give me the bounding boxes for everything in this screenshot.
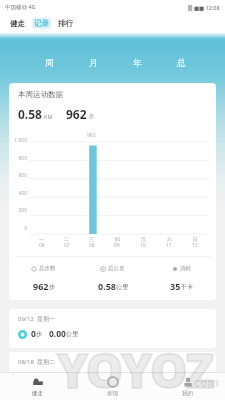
staticText: 千卡 — [181, 283, 193, 291]
staticText: 年 — [133, 57, 142, 68]
staticText: 962 — [87, 132, 96, 139]
staticText: 步 — [36, 373, 42, 381]
staticText: 962 — [33, 280, 49, 292]
button[interactable]: 发现 — [75, 373, 150, 400]
staticText: 总步数 — [39, 265, 56, 272]
staticText: 日 — [193, 236, 198, 242]
staticText: 总公里 — [108, 265, 125, 272]
button[interactable]: 月 — [71, 55, 115, 69]
button[interactable]: 总 — [159, 55, 203, 69]
staticText: 健走 — [32, 390, 43, 397]
staticText: 步 — [36, 330, 42, 338]
staticText: 步 — [49, 283, 55, 291]
staticText: 0.58 — [18, 106, 42, 122]
staticText: 消耗 — [180, 265, 191, 272]
staticText: 发现 — [107, 390, 118, 397]
staticText: 12 — [192, 242, 198, 249]
staticText: 08 — [89, 242, 95, 249]
staticText: 09/12 星期一 — [18, 315, 56, 323]
button[interactable]: 周 — [28, 55, 71, 69]
staticText: 400 — [9, 190, 27, 197]
staticText: 公里 — [66, 373, 78, 381]
staticText: 排行 — [58, 19, 73, 28]
staticText: YOYOZ — [57, 338, 213, 400]
staticText: ▒ ■■ 12:08 — [188, 4, 220, 11]
staticText: 09 — [114, 242, 120, 249]
staticText: 一 — [39, 236, 44, 242]
staticText: 二 — [64, 236, 69, 242]
button[interactable]: 08/18 星期二 — [9, 352, 216, 391]
button[interactable]: 09/12 星期一 — [9, 309, 216, 348]
staticText: 06 — [39, 242, 45, 249]
staticText: 健走 — [10, 19, 25, 28]
staticText: 11 — [166, 242, 172, 249]
staticText: 五 — [141, 236, 146, 242]
staticText: 1,000 — [9, 137, 27, 144]
staticText: 步 — [89, 113, 95, 120]
staticText: 07 — [64, 242, 70, 249]
button[interactable]: 健走 — [0, 373, 75, 400]
button[interactable]: 记录 — [32, 18, 51, 29]
staticText: 中国移动 4G — [5, 3, 36, 11]
staticText: 本周运动数据 — [18, 90, 63, 99]
staticText: 35 — [170, 280, 181, 292]
staticText: 总 — [177, 57, 186, 68]
staticText: 我的 — [182, 390, 193, 397]
staticText: 周 — [45, 57, 54, 68]
staticText: 四 — [115, 236, 120, 242]
staticText: 0 — [31, 371, 36, 383]
staticText: 0.58 — [98, 280, 116, 292]
staticText: 0 — [9, 225, 27, 232]
staticText: .com — [190, 374, 220, 390]
staticText: 0.00 — [49, 328, 66, 340]
staticText: 0 — [31, 328, 36, 340]
button[interactable]: 年 — [115, 55, 159, 69]
staticText: 08/18 星期二 — [18, 358, 56, 366]
staticText: 800 — [9, 155, 27, 162]
staticText: KM — [44, 113, 53, 120]
staticText: 六 — [167, 236, 172, 242]
staticText: 记录 — [34, 19, 49, 28]
staticText: 公里 — [66, 330, 78, 338]
staticText: 962 — [66, 106, 87, 122]
button[interactable]: 我的 — [150, 373, 225, 400]
staticText: 0.00 — [49, 371, 66, 383]
staticText: 200 — [9, 207, 27, 214]
staticText: 月 — [89, 57, 98, 68]
staticText: YOYOZ — [57, 338, 213, 400]
staticText: 公里 — [116, 283, 128, 291]
staticText: 三 — [89, 236, 94, 242]
button[interactable]: 排行 — [57, 19, 74, 28]
staticText: 600 — [9, 172, 27, 179]
button[interactable]: 健走 — [9, 19, 26, 28]
staticText: 10 — [140, 242, 146, 249]
